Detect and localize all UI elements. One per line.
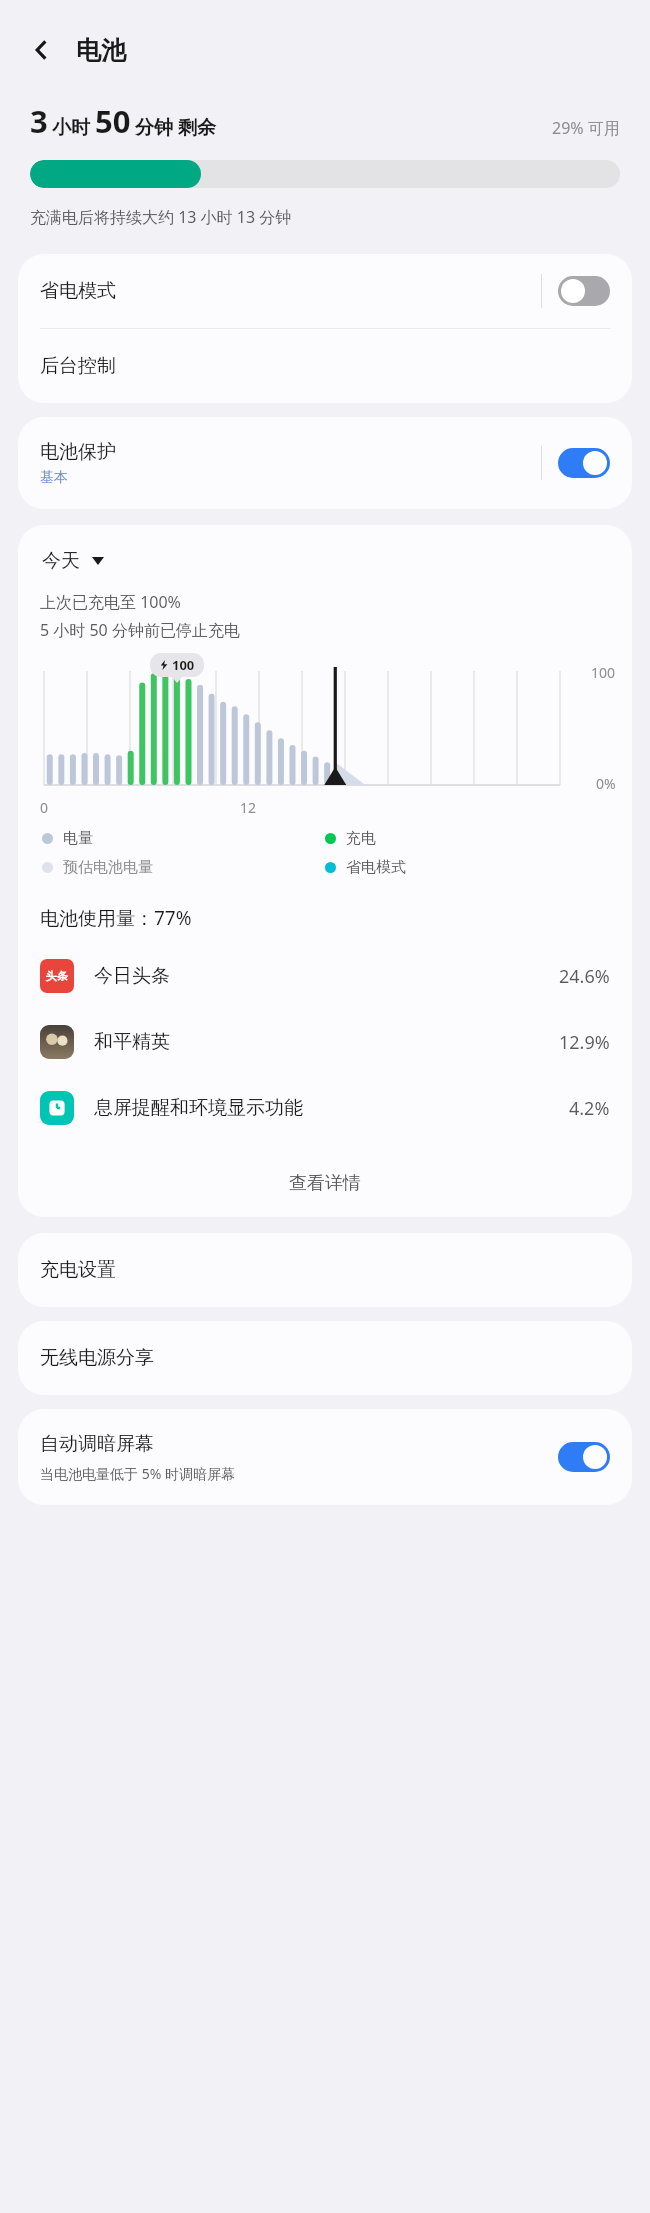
- staticText: 4.2%: [569, 1096, 610, 1121]
- staticText: 24.6%: [559, 964, 610, 989]
- button[interactable]: 充电设置: [18, 1233, 632, 1307]
- button[interactable]: [558, 1442, 610, 1472]
- staticText: 100: [172, 656, 195, 674]
- staticText: 后台控制: [40, 354, 116, 378]
- button[interactable]: 自动调暗屏幕: [18, 1409, 632, 1505]
- staticText: 省电模式: [40, 279, 116, 303]
- staticText: 3: [30, 100, 48, 142]
- staticText: 12: [240, 798, 257, 817]
- staticText: 预估电池电量: [63, 858, 153, 877]
- staticText: 充电: [346, 829, 376, 848]
- staticText: 电池保护: [40, 440, 116, 464]
- button[interactable]: 和平精英: [18, 1009, 632, 1075]
- button[interactable]: 后台控制: [18, 329, 632, 403]
- staticText: 小时: [52, 116, 90, 140]
- staticText: 和平精英: [94, 1030, 170, 1054]
- button[interactable]: 查看详情: [18, 1155, 632, 1211]
- staticText: 当电池电量低于 5% 时调暗屏幕: [40, 1464, 235, 1483]
- staticText: 充满电后将持续大约 13 小时 13 分钟: [30, 206, 292, 228]
- staticText: 电量: [63, 829, 93, 848]
- staticText: 今天: [42, 549, 80, 573]
- button[interactable]: 电池保护: [18, 417, 632, 509]
- staticText: 0%: [596, 774, 616, 793]
- staticText: 电池: [76, 35, 126, 66]
- staticText: 上次已充电至 100%: [40, 591, 181, 613]
- button[interactable]: [558, 448, 610, 478]
- button[interactable]: 省电模式: [18, 254, 632, 328]
- staticText: 今日头条: [94, 964, 170, 988]
- button[interactable]: 头条: [18, 943, 632, 1009]
- staticText: 查看详情: [289, 1172, 361, 1195]
- button[interactable]: 息屏提醒和环境显示功能: [18, 1075, 632, 1141]
- staticText: 基本: [40, 469, 68, 487]
- staticText: 头条: [46, 969, 68, 983]
- staticText: 无线电源分享: [40, 1346, 154, 1370]
- staticText: 自动调暗屏幕: [40, 1432, 154, 1456]
- staticText: 100: [591, 663, 616, 682]
- staticText: 省电模式: [346, 858, 406, 877]
- button[interactable]: 无线电源分享: [18, 1321, 632, 1395]
- staticText: 12.9%: [559, 1030, 610, 1055]
- staticText: 电池使用量：77%: [40, 905, 192, 931]
- staticText: 充电设置: [40, 1258, 116, 1282]
- staticText: 分钟 剩余: [135, 114, 216, 140]
- button[interactable]: [558, 276, 610, 306]
- staticText: 0: [40, 798, 49, 817]
- staticText: 50: [95, 100, 131, 142]
- staticText: 29% 可用: [552, 117, 620, 139]
- staticText: 5 小时 50 分钟前已停止充电: [40, 619, 240, 641]
- button[interactable]: 今天: [40, 545, 106, 577]
- staticText: 息屏提醒和环境显示功能: [94, 1096, 303, 1120]
- button[interactable]: 返回: [22, 30, 62, 70]
